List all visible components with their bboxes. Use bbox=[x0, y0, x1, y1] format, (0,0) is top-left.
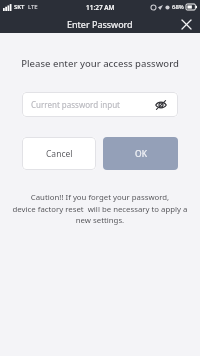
staticText: LTE bbox=[28, 3, 38, 11]
staticText: 68% bbox=[172, 3, 184, 11]
staticText: OK bbox=[135, 148, 147, 160]
staticText: Cancel bbox=[46, 148, 73, 160]
button[interactable]: Current password input bbox=[22, 92, 178, 117]
staticText: SKT bbox=[14, 3, 25, 11]
staticText: Caution!! If you forget your password, d… bbox=[10, 192, 190, 225]
staticText: Current password input bbox=[31, 99, 153, 110]
button[interactable]: OK bbox=[103, 137, 178, 170]
button[interactable]: Cancel bbox=[22, 137, 96, 170]
button[interactable]: Show password bbox=[153, 97, 169, 113]
staticText: Please enter your access password bbox=[0, 57, 200, 70]
staticText: Enter Password bbox=[67, 18, 133, 30]
button[interactable]: Close bbox=[179, 17, 193, 31]
staticText: 11:27 AM bbox=[86, 3, 115, 12]
